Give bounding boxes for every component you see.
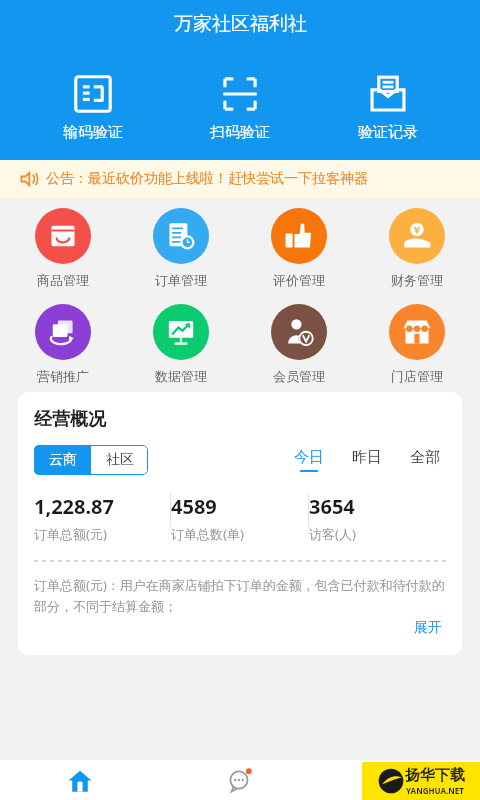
button[interactable]: 公告：最近砍价功能上线啦！赶快尝试一下拉客神器 (0, 160, 480, 198)
button[interactable]: 云商 (34, 445, 91, 475)
staticText: 万家社区福利社 (174, 12, 307, 36)
staticText: 订单管理 (155, 272, 207, 288)
staticText: 今日 (294, 448, 324, 467)
button[interactable]: 门店管理 (362, 302, 472, 386)
staticText: 营销推广 (37, 368, 89, 384)
button[interactable]: 验证记录 (333, 71, 443, 144)
staticText: 订单总额(元)：用户在商家店铺拍下订单的金额，包含已付款和待付款的部分，不同于结… (34, 576, 446, 615)
staticText: 全部 (410, 448, 440, 467)
staticText: 展开 (414, 619, 442, 637)
staticText: 访客(人) (309, 525, 356, 543)
button[interactable]: 全部 (408, 448, 442, 472)
staticText: YANGHUA.NET (406, 785, 464, 796)
button[interactable]: 财务管理 (362, 206, 472, 290)
button[interactable]: 社区 (91, 445, 148, 475)
staticText: 财务管理 (391, 272, 443, 288)
staticText: 3654 (309, 493, 355, 520)
staticText: 输码验证 (63, 123, 123, 142)
staticText: 社区 (106, 451, 134, 469)
button[interactable]: 昨日 (350, 448, 384, 472)
button[interactable]: 商品管理 (8, 206, 118, 290)
staticText: 经营概况 (34, 408, 106, 431)
staticText: 数据管理 (155, 368, 207, 384)
button[interactable]: 订单管理 (126, 206, 236, 290)
button[interactable]: Messages (160, 760, 320, 800)
button[interactable]: 展开 (410, 617, 446, 639)
staticText: 会员管理 (273, 368, 325, 384)
button[interactable]: Home (0, 760, 160, 800)
staticText: 门店管理 (391, 368, 443, 384)
button[interactable]: 今日 (292, 448, 326, 472)
button[interactable]: 会员管理 (244, 302, 354, 386)
button[interactable]: 数据管理 (126, 302, 236, 386)
staticText: 1,228.87 (34, 493, 114, 520)
staticText: 4589 (171, 493, 217, 520)
button[interactable]: 评价管理 (244, 206, 354, 290)
button[interactable]: 扫码验证 (185, 71, 295, 144)
button[interactable]: 输码验证 (38, 71, 148, 144)
staticText: 验证记录 (358, 123, 418, 142)
staticText: 商品管理 (37, 272, 89, 288)
button[interactable]: 营销推广 (8, 302, 118, 386)
staticText: 订单总额(元) (34, 525, 107, 543)
staticText: 扬华下载 (405, 766, 465, 785)
staticText: 订单总数(单) (171, 525, 244, 543)
staticText: 扫码验证 (210, 123, 270, 142)
staticText: 评价管理 (273, 272, 325, 288)
staticText: 云商 (49, 451, 77, 469)
staticText: 公告：最近砍价功能上线啦！赶快尝试一下拉客神器 (46, 170, 368, 188)
staticText: 昨日 (352, 448, 382, 467)
